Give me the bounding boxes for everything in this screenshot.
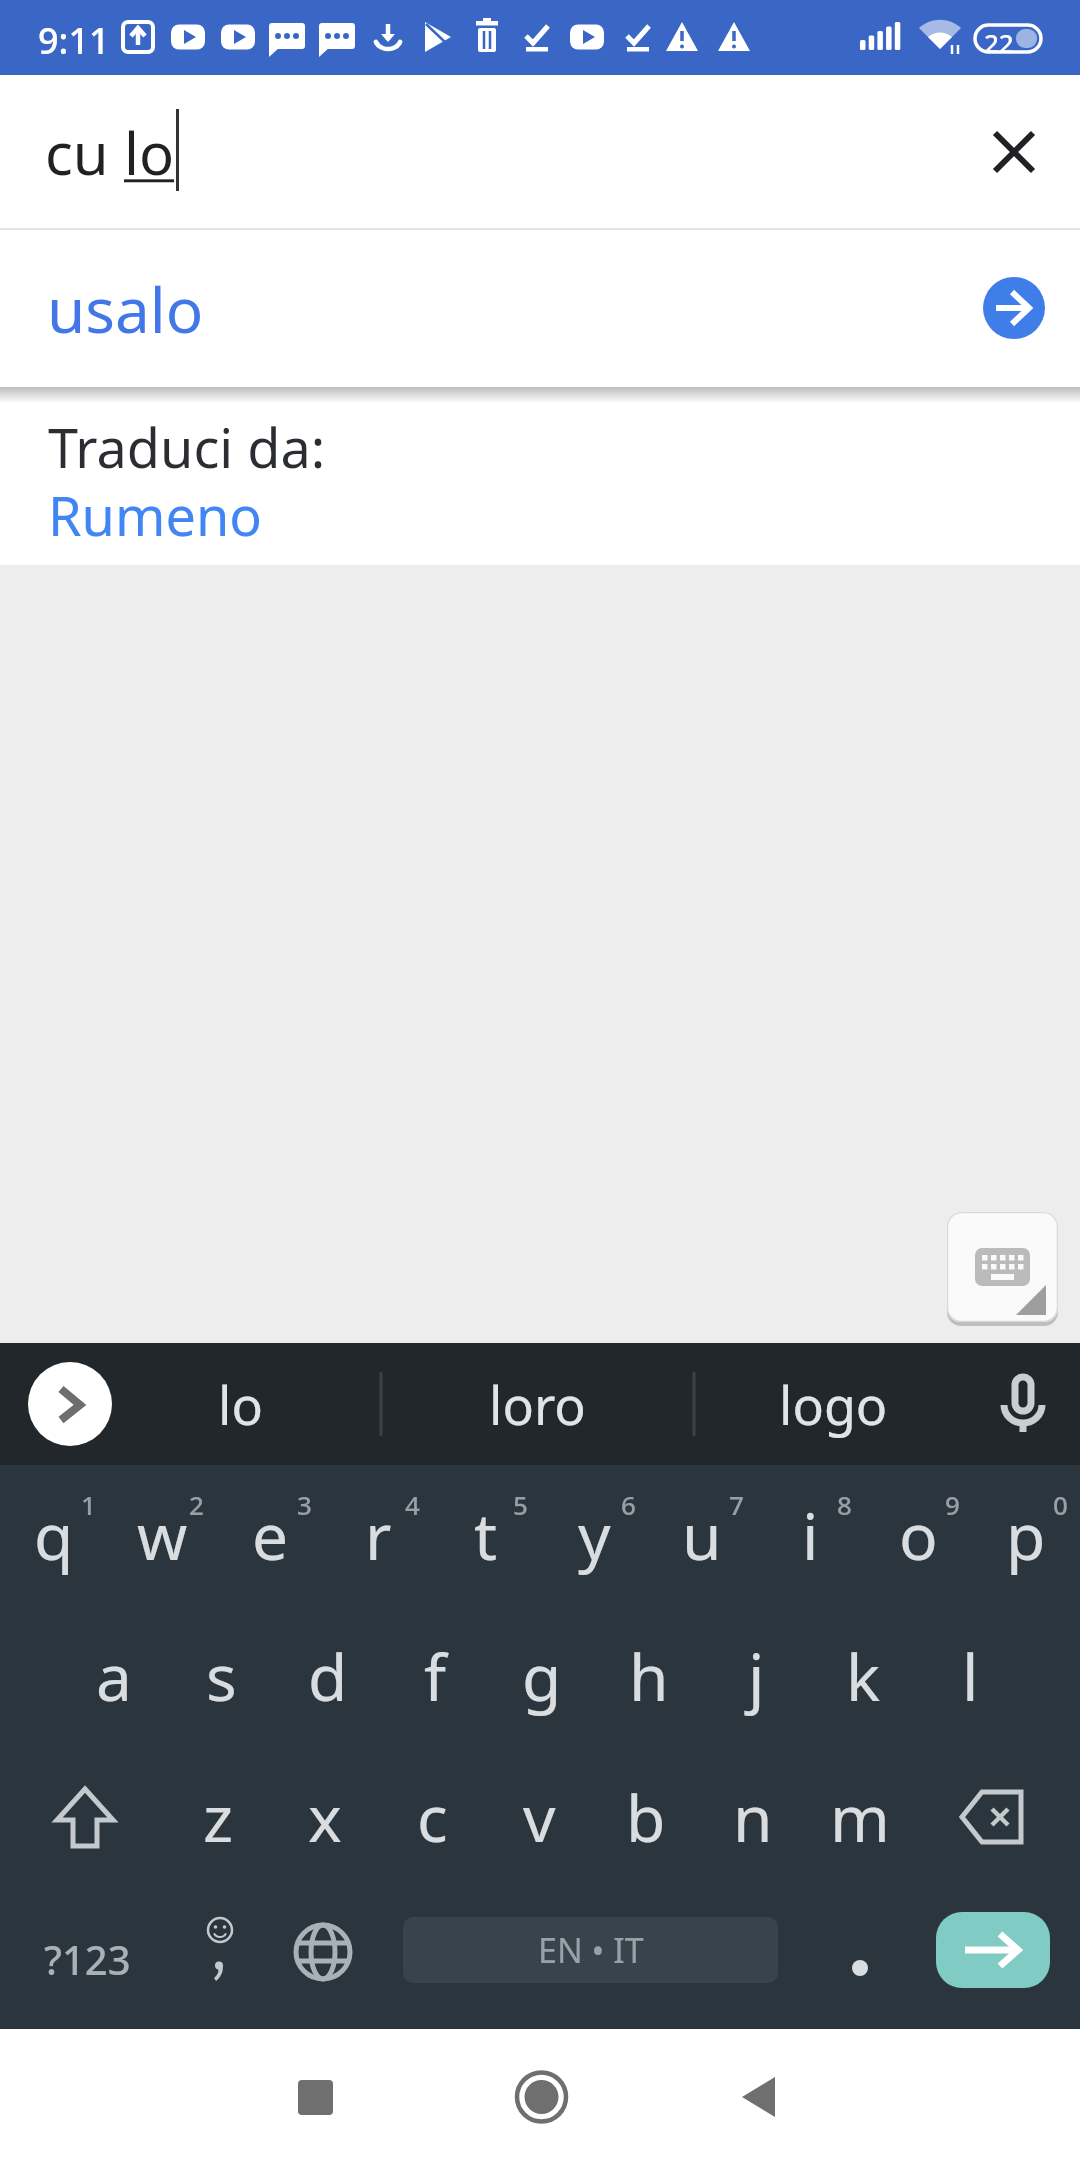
button[interactable]: c <box>378 1747 486 1888</box>
staticText: lo <box>124 113 175 192</box>
button[interactable]: EN • IT <box>403 1917 778 1983</box>
staticText: c <box>417 1774 448 1861</box>
staticText: j <box>748 1633 765 1720</box>
button[interactable] <box>704 2071 812 2160</box>
button[interactable] <box>941 1747 1049 1888</box>
staticText: 6 <box>621 1487 636 1522</box>
button[interactable]: cu <box>0 75 1080 228</box>
staticText: b <box>626 1774 666 1861</box>
button[interactable]: loro <box>447 1343 627 1465</box>
button[interactable]: q <box>0 1465 108 1606</box>
staticText: 2 <box>189 1487 204 1522</box>
button[interactable]: a <box>60 1606 168 1747</box>
staticText: 3 <box>297 1487 312 1522</box>
staticText: a <box>96 1633 132 1720</box>
staticText: 5 <box>513 1487 528 1522</box>
staticText: i <box>802 1492 819 1579</box>
button[interactable]: k <box>809 1606 917 1747</box>
staticText: logo <box>779 1369 888 1440</box>
staticText: h <box>629 1633 669 1720</box>
button[interactable]: ?123 <box>33 1888 141 2029</box>
staticText: t <box>474 1492 498 1579</box>
button[interactable] <box>31 1747 139 1888</box>
staticText: d <box>308 1633 348 1720</box>
button[interactable]: l <box>916 1606 1024 1747</box>
button[interactable]: d <box>274 1606 382 1747</box>
button[interactable]: n <box>699 1747 807 1888</box>
staticText: Traduci da: <box>48 410 326 484</box>
button[interactable]: p <box>972 1465 1080 1606</box>
staticText: v <box>523 1774 556 1861</box>
button[interactable]: g <box>488 1606 596 1747</box>
button[interactable] <box>947 1212 1058 1322</box>
staticText: k <box>846 1633 881 1720</box>
button[interactable]: e <box>216 1465 324 1606</box>
staticText: EN • IT <box>538 1927 644 1973</box>
staticText: 22 <box>984 25 1014 60</box>
staticText: 7 <box>729 1487 744 1522</box>
staticText: p <box>1006 1492 1046 1579</box>
button[interactable]: u <box>648 1465 756 1606</box>
button[interactable]: logo <box>743 1343 923 1465</box>
staticText: 0 <box>1053 1487 1068 1522</box>
button[interactable] <box>966 1347 1080 1461</box>
staticText: 4 <box>405 1487 420 1522</box>
button[interactable]: lo <box>150 1343 330 1465</box>
staticText: n <box>733 1774 773 1861</box>
button[interactable] <box>269 1888 377 2029</box>
staticText: l <box>962 1633 979 1720</box>
button[interactable] <box>936 1912 1050 1988</box>
staticText: 9 <box>945 1487 960 1522</box>
button[interactable]: i <box>756 1465 864 1606</box>
button[interactable]: Rumeno <box>48 478 262 552</box>
button[interactable]: h <box>595 1606 703 1747</box>
button[interactable]: m <box>806 1747 914 1888</box>
staticText: loro <box>489 1369 586 1440</box>
staticText: y <box>578 1492 611 1579</box>
button[interactable]: t <box>432 1465 540 1606</box>
staticText: o <box>899 1492 938 1579</box>
staticText: x <box>308 1774 342 1861</box>
staticText: u <box>682 1492 722 1579</box>
staticText: g <box>522 1633 562 1720</box>
staticText: z <box>203 1774 234 1861</box>
button[interactable] <box>983 277 1045 339</box>
button[interactable] <box>164 1888 272 2029</box>
staticText: q <box>34 1492 74 1579</box>
staticText: cu <box>45 113 124 192</box>
button[interactable]: y <box>540 1465 648 1606</box>
staticText: ?123 <box>44 1932 131 1986</box>
staticText: w <box>137 1492 188 1579</box>
button[interactable]: x <box>271 1747 379 1888</box>
button[interactable]: j <box>702 1606 810 1747</box>
button[interactable] <box>806 1888 914 2029</box>
button[interactable]: v <box>485 1747 593 1888</box>
staticText: m <box>830 1774 890 1861</box>
staticText: lo <box>218 1369 263 1440</box>
staticText: 9:11 <box>38 16 110 65</box>
button[interactable]: z <box>164 1747 272 1888</box>
button[interactable] <box>262 2071 370 2160</box>
staticText: s <box>206 1633 237 1720</box>
button[interactable]: s <box>167 1606 275 1747</box>
staticText: f <box>424 1633 447 1720</box>
staticText: usalo <box>47 267 204 351</box>
button[interactable]: b <box>592 1747 700 1888</box>
button[interactable]: r <box>324 1465 432 1606</box>
staticText: e <box>252 1492 289 1579</box>
button[interactable] <box>487 2071 595 2160</box>
staticText: 8 <box>837 1487 852 1522</box>
button[interactable] <box>28 1362 112 1446</box>
button[interactable]: usalo <box>0 230 1080 387</box>
button[interactable] <box>992 130 1036 174</box>
button[interactable]: f <box>381 1606 489 1747</box>
staticText: r <box>365 1492 392 1579</box>
button[interactable]: w <box>108 1465 216 1606</box>
staticText: 1 <box>81 1487 96 1522</box>
button[interactable]: o <box>864 1465 972 1606</box>
